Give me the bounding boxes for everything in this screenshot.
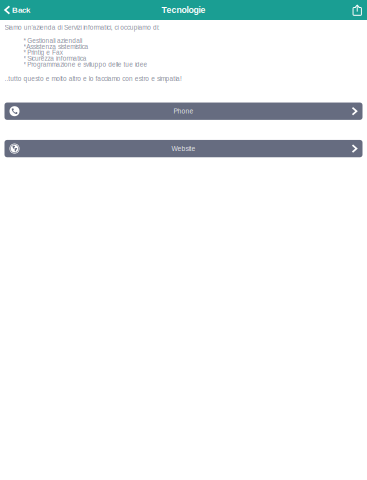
staticText: * Gestionali aziendali xyxy=(23,37,82,44)
staticText: Tecnologie xyxy=(161,5,205,15)
staticText: Siamo un'azienda di Servizi informatici,… xyxy=(4,24,160,31)
button[interactable]: Website xyxy=(4,140,362,157)
staticText: Website xyxy=(171,145,195,152)
button[interactable]: Phone xyxy=(4,102,362,120)
staticText: Phone xyxy=(173,107,193,115)
staticText: ..tutto questo e molto altro e lo faccia… xyxy=(4,75,182,82)
button[interactable]: Share xyxy=(346,0,367,20)
staticText: * Assistenza sistemistica xyxy=(23,43,89,50)
staticText: * Programmazione e sviluppo delle tue id… xyxy=(23,61,148,68)
staticText: * Printig e Fax xyxy=(23,49,63,56)
staticText: * Sicurezza informatica xyxy=(23,55,87,62)
button[interactable]: Back xyxy=(0,0,35,20)
staticText: Back xyxy=(12,5,30,14)
